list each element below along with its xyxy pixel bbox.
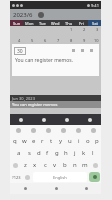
button[interactable]: 19: [24, 60, 35, 69]
button[interactable]: 26: [24, 71, 35, 80]
button[interactable]: l: [88, 147, 97, 159]
button[interactable]: 1: [63, 27, 74, 36]
staticText: q: [13, 137, 17, 145]
button[interactable]: g: [52, 147, 61, 159]
button[interactable]: c: [40, 159, 50, 171]
staticText: 9:41: [91, 3, 99, 8]
button[interactable]: 12: [24, 49, 35, 58]
button[interactable]: Suggestion: [41, 125, 56, 135]
button[interactable]: o: [83, 135, 92, 147]
button[interactable]: ?123: [10, 171, 23, 183]
button[interactable]: 24: [89, 60, 100, 69]
button[interactable]: Clipboard: [55, 114, 78, 125]
button[interactable]: Suggestion: [86, 125, 101, 135]
button[interactable]: f: [43, 147, 52, 159]
button[interactable]: 27: [37, 71, 48, 80]
staticText: t: [50, 137, 53, 145]
button[interactable]: j: [70, 147, 79, 159]
button[interactable]: 5: [24, 38, 35, 47]
button[interactable]: 28: [50, 71, 61, 80]
button[interactable]: 20: [37, 60, 48, 69]
button[interactable]: 17: [89, 49, 100, 58]
button[interactable]: Stickers: [32, 114, 55, 125]
button[interactable]: Suggestion: [56, 125, 71, 135]
button[interactable]: e: [29, 135, 38, 147]
button[interactable]: t: [47, 135, 56, 147]
button[interactable]: x: [30, 159, 40, 171]
staticText: 6: [44, 38, 47, 43]
button[interactable]: Backspace: [90, 159, 101, 171]
staticText: 3: [96, 27, 99, 32]
button[interactable]: u: [65, 135, 74, 147]
button[interactable]: 2: [76, 27, 87, 36]
button[interactable]: 15: [63, 49, 74, 58]
button[interactable]: Action: [88, 47, 95, 54]
button[interactable]: h: [61, 147, 70, 159]
button[interactable]: b: [60, 159, 70, 171]
staticText: 21: [55, 60, 60, 65]
button[interactable]: a: [14, 147, 24, 159]
button[interactable]: Today: [38, 12, 44, 18]
button[interactable]: Recents: [71, 183, 101, 194]
button[interactable]: Suggestion: [26, 125, 41, 135]
button[interactable]: m: [80, 159, 90, 171]
staticText: b: [63, 161, 67, 169]
button[interactable]: Suggestion: [10, 125, 26, 135]
button[interactable]: r: [38, 135, 47, 147]
button[interactable]: Emoji: [23, 171, 32, 183]
button[interactable]: Back: [10, 183, 41, 194]
button[interactable]: v: [50, 159, 60, 171]
button[interactable]: [89, 71, 100, 80]
button[interactable]: d: [34, 147, 43, 159]
button[interactable]: 22: [63, 60, 74, 69]
button[interactable]: w: [20, 135, 29, 147]
button[interactable]: 25: [11, 71, 22, 80]
button[interactable]: i: [74, 135, 83, 147]
staticText: ?123: [12, 175, 21, 180]
button[interactable]: Shift: [10, 159, 21, 171]
button[interactable]: n: [70, 159, 80, 171]
staticText: w: [22, 137, 27, 145]
button[interactable]: 18: [11, 60, 22, 69]
button[interactable]: Menu: [10, 114, 32, 125]
button[interactable]: 6: [37, 38, 48, 47]
button[interactable]: k: [79, 147, 88, 159]
button[interactable]: Suggestion: [71, 125, 86, 135]
button[interactable]: 9: [76, 38, 87, 47]
button[interactable]: s: [24, 147, 34, 159]
button[interactable]: Home: [41, 183, 71, 194]
staticText: 2: [83, 27, 86, 32]
button[interactable]: 30: [76, 71, 87, 80]
staticText: 15: [68, 49, 73, 54]
button[interactable]: 16: [76, 49, 87, 58]
button[interactable]: q: [10, 135, 20, 147]
button[interactable]: 29: [63, 71, 74, 80]
button[interactable]: p: [92, 135, 101, 147]
button[interactable]: 10: [89, 38, 100, 47]
button[interactable]: 4: [11, 38, 22, 47]
button[interactable]: 30: [14, 47, 26, 55]
button[interactable]: 11: [11, 49, 22, 58]
button[interactable]: Enter: [89, 172, 100, 182]
button[interactable]: 21: [50, 60, 61, 69]
button[interactable]: 7: [50, 38, 61, 47]
button[interactable]: y: [56, 135, 65, 147]
button[interactable]: Action: [70, 47, 77, 54]
button[interactable]: 8: [63, 38, 74, 47]
button[interactable]: English: [33, 172, 87, 182]
button[interactable]: z: [21, 159, 30, 171]
button[interactable]: Action: [79, 47, 86, 54]
staticText: 9: [83, 38, 86, 43]
button[interactable]: Settings: [78, 114, 101, 125]
button[interactable]: 3: [89, 27, 100, 36]
